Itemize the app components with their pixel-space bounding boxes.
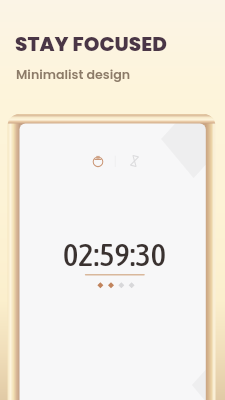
staticText: 02:59:30 <box>63 236 166 273</box>
staticText: Minimalist design <box>16 66 131 84</box>
staticText: STAY FOCUSED <box>15 30 167 58</box>
button[interactable]: Stopwatch <box>88 151 109 172</box>
button[interactable]: Timer <box>125 151 146 172</box>
